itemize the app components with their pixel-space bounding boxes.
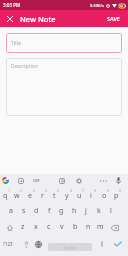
button[interactable]: z <box>17 220 29 234</box>
staticText: u <box>77 191 82 201</box>
staticText: r <box>41 191 44 201</box>
staticText: d <box>34 206 39 216</box>
button[interactable]: j <box>80 204 92 218</box>
staticText: Title <box>11 40 21 47</box>
button[interactable]: d <box>30 204 42 218</box>
button[interactable]: w <box>11 189 23 203</box>
staticText: 4 <box>45 188 48 193</box>
button[interactable]: f <box>43 204 55 218</box>
staticText: 9 <box>107 188 110 193</box>
staticText: x <box>34 222 38 232</box>
button[interactable]: n <box>82 220 94 234</box>
button[interactable]: Description <box>6 58 122 116</box>
button[interactable]: l <box>105 204 117 218</box>
button[interactable]: a <box>5 204 17 218</box>
staticText: 8 <box>94 188 97 193</box>
button[interactable]: Close <box>3 12 16 25</box>
staticText: k <box>97 206 101 216</box>
staticText: SAVE <box>107 15 120 22</box>
staticText: 3 <box>33 188 36 193</box>
staticText: 7 <box>82 188 85 193</box>
button[interactable]: Symbols <box>0 235 17 253</box>
staticText: j <box>85 206 87 216</box>
staticText: GIF <box>33 178 40 183</box>
staticText: English <box>64 245 76 250</box>
button[interactable]: Settings <box>72 174 85 187</box>
staticText: 6 <box>70 188 73 193</box>
button[interactable]: SAVE <box>102 10 124 27</box>
staticText: g <box>59 206 64 216</box>
staticText: 0.30K/s <box>90 3 104 8</box>
button[interactable]: e <box>24 189 36 203</box>
button[interactable]: GIF <box>30 174 43 187</box>
button[interactable]: i <box>85 189 97 203</box>
button[interactable]: Stickers <box>55 174 68 187</box>
button[interactable]: b <box>69 220 81 234</box>
staticText: 5 <box>57 188 60 193</box>
button[interactable]: y <box>61 189 73 203</box>
staticText: q <box>3 191 8 201</box>
staticText: s <box>22 206 26 216</box>
button[interactable]: u <box>73 189 85 203</box>
button[interactable]: k <box>93 204 105 218</box>
button[interactable]: v <box>56 220 68 234</box>
staticText: e <box>28 191 32 201</box>
staticText: 0 <box>119 188 122 193</box>
button[interactable]: Shift <box>1 220 18 235</box>
button[interactable]: m <box>94 220 106 234</box>
staticText: 3:03 PM <box>3 2 21 8</box>
staticText: c <box>47 222 51 232</box>
staticText: Description <box>11 63 38 70</box>
button[interactable]: Change keyboard <box>31 235 45 253</box>
staticText: 2 <box>20 188 23 193</box>
button[interactable]: p <box>110 189 122 203</box>
staticText: t <box>53 191 56 201</box>
staticText: 1 <box>8 188 11 193</box>
button[interactable]: Voice input <box>112 174 125 187</box>
button[interactable]: Space <box>48 243 92 251</box>
staticText: w <box>14 191 20 201</box>
button[interactable]: t <box>48 189 60 203</box>
button[interactable]: g <box>55 204 67 218</box>
button[interactable]: Backspace <box>106 220 123 235</box>
button[interactable]: x <box>30 220 42 234</box>
button[interactable]: r <box>36 189 48 203</box>
button[interactable]: Period <box>96 235 108 253</box>
staticText: y <box>65 191 69 201</box>
staticText: z <box>21 222 25 232</box>
button[interactable]: Comma <box>19 235 33 253</box>
button[interactable]: Clipboard <box>14 174 27 187</box>
button[interactable]: More options <box>97 174 110 187</box>
button[interactable]: h <box>68 204 80 218</box>
staticText: p <box>114 191 119 201</box>
staticText: b <box>73 222 78 232</box>
staticText: ?123 <box>3 241 13 247</box>
button[interactable]: s <box>18 204 30 218</box>
button[interactable]: q <box>0 189 11 203</box>
staticText: New Note <box>20 14 56 24</box>
button[interactable]: Google search <box>0 174 12 187</box>
staticText: o <box>102 191 107 201</box>
staticText: n <box>86 222 91 232</box>
staticText: i <box>90 191 92 201</box>
staticText: f <box>48 206 51 216</box>
button[interactable]: o <box>98 189 110 203</box>
staticText: a <box>9 206 13 216</box>
staticText: v <box>60 222 64 232</box>
staticText: l <box>110 206 112 216</box>
button[interactable]: Enter <box>110 235 126 253</box>
staticText: h <box>72 206 77 216</box>
staticText: m <box>97 222 104 232</box>
button[interactable]: c <box>43 220 55 234</box>
button[interactable]: Title <box>6 33 122 53</box>
